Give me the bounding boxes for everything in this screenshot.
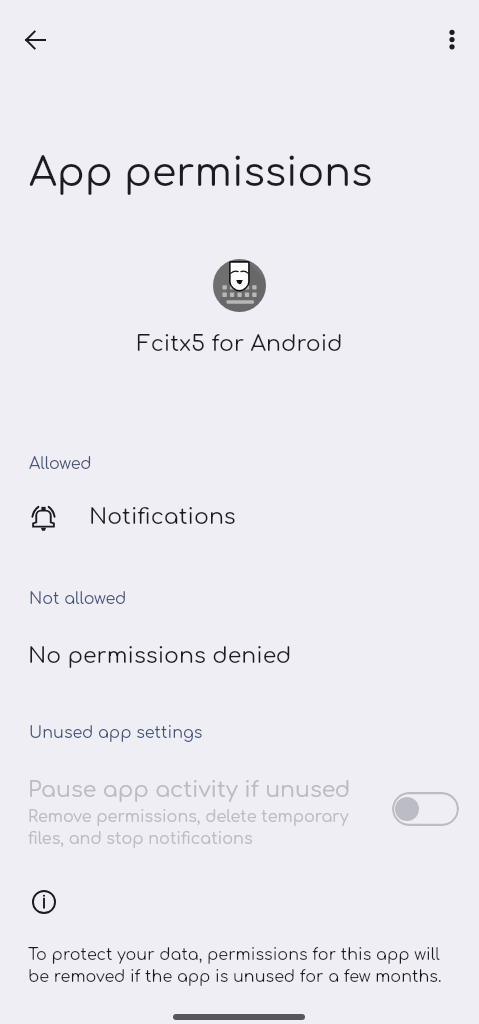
staticText: Allowed (29, 455, 92, 473)
button[interactable]: Navigate up (12, 16, 60, 64)
staticText: Unused app settings (29, 724, 203, 742)
button[interactable]: Notifications (0, 495, 479, 543)
staticText: Not allowed (29, 590, 127, 608)
staticText: Notifications (89, 505, 236, 530)
button[interactable]: Pause app activity if unused (392, 792, 459, 826)
staticText: Pause app activity if unused (28, 778, 351, 803)
button[interactable]: Pause app activity if unused (0, 766, 479, 856)
staticText: Fcitx5 for Android (137, 332, 343, 357)
staticText: To protect your data, permissions for th… (28, 946, 456, 985)
staticText: No permissions denied (28, 644, 292, 669)
staticText: App permissions (29, 151, 373, 195)
button[interactable]: More options (428, 16, 476, 64)
staticText: Remove permissions, delete temporary fil… (28, 808, 358, 847)
